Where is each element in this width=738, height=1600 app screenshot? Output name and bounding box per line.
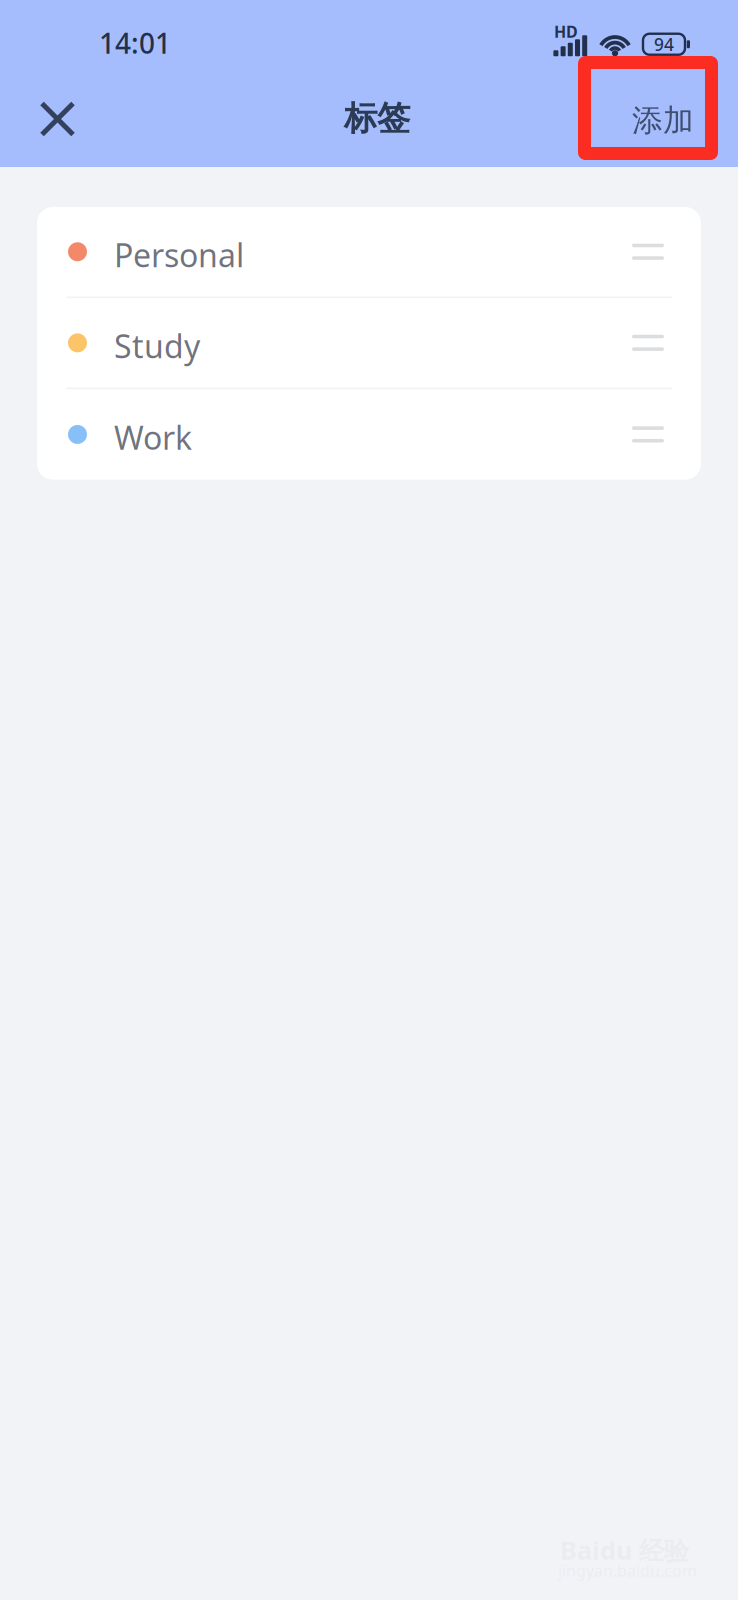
staticText: Work — [114, 416, 192, 459]
staticText: Study — [114, 325, 200, 367]
button[interactable]: Personal — [37, 207, 701, 298]
staticText: 94 — [654, 33, 674, 56]
staticText: 添加 — [632, 102, 694, 139]
button[interactable]: Close — [21, 76, 99, 167]
staticText: Personal — [114, 233, 244, 276]
staticText: 14:01 — [99, 24, 171, 62]
button[interactable]: Work — [37, 389, 701, 480]
button[interactable]: Study — [37, 298, 701, 389]
button[interactable]: 添加 — [598, 82, 712, 160]
staticText: HD — [554, 21, 578, 42]
staticText: 标签 — [344, 98, 410, 139]
